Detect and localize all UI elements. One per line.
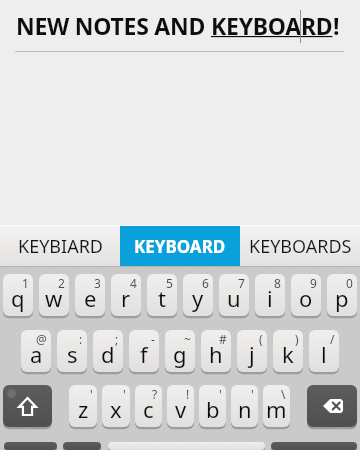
staticText: - (151, 331, 155, 347)
button[interactable]: b (199, 385, 226, 427)
other: Comma (63, 442, 101, 450)
staticText: e (84, 283, 97, 313)
staticText: o (299, 283, 313, 313)
button[interactable]: KEYBOARD (120, 226, 240, 266)
button[interactable]: m (263, 385, 290, 427)
button[interactable]: o (291, 274, 321, 316)
button[interactable]: i (255, 274, 285, 316)
button[interactable]: h (201, 330, 231, 372)
staticText: c (143, 394, 154, 424)
staticText: k (282, 339, 294, 369)
staticText: KEYBOARD (134, 235, 226, 258)
button[interactable]: u (219, 274, 249, 316)
button[interactable]: v (167, 385, 194, 427)
other: Shift (3, 385, 52, 427)
button[interactable]: t (147, 274, 177, 316)
staticText: 4 (130, 275, 137, 291)
staticText: i (267, 283, 273, 313)
staticText: 6 (202, 275, 209, 291)
staticText: ' (90, 386, 93, 402)
button[interactable]: p (327, 274, 357, 316)
button[interactable]: a (21, 330, 51, 372)
staticText: ; (115, 331, 119, 347)
staticText: b (206, 394, 220, 424)
staticText: m (266, 394, 287, 424)
button[interactable]: y (183, 274, 213, 316)
staticText: 5 (166, 275, 173, 291)
staticText: h (209, 339, 223, 369)
button[interactable]: , (63, 442, 101, 450)
button[interactable]: q (3, 274, 33, 316)
staticText: v (175, 394, 187, 424)
staticText: KEYBOARD (211, 10, 333, 41)
button[interactable] (108, 442, 265, 450)
staticText: ! (333, 10, 340, 41)
staticText: g (173, 339, 187, 369)
staticText: KEYBIARD (18, 234, 103, 259)
staticText: u (227, 283, 241, 313)
button[interactable]: d (93, 330, 123, 372)
button[interactable]: k (273, 330, 303, 372)
button[interactable]: z (69, 385, 97, 427)
other: Enter (271, 442, 357, 450)
staticText: f (140, 339, 148, 369)
button[interactable] (307, 385, 357, 427)
staticText: : (79, 331, 83, 347)
staticText: 1 (22, 275, 29, 291)
staticText: # (219, 331, 227, 347)
staticText: 9 (310, 275, 317, 291)
button[interactable]: x (102, 385, 130, 427)
staticText: ? (152, 386, 158, 402)
button[interactable]: KEYBOARDS (240, 226, 360, 266)
button[interactable] (271, 442, 357, 450)
button[interactable]: ?123 (4, 442, 57, 450)
staticText: NEW NOTES AND (16, 10, 211, 41)
staticText: w (45, 283, 63, 313)
button[interactable]: s (57, 330, 87, 372)
staticText: s (67, 339, 78, 369)
staticText: r (121, 283, 131, 313)
staticText: q (11, 283, 25, 313)
button[interactable]: g (165, 330, 195, 372)
staticText: y (192, 283, 204, 313)
staticText: ' (251, 386, 254, 402)
staticText: 8 (274, 275, 281, 291)
staticText: ( (259, 331, 263, 347)
other: Backspace (307, 385, 357, 427)
staticText: 3 (94, 275, 101, 291)
staticText: 7 (238, 275, 245, 291)
button[interactable]: n (231, 385, 258, 427)
staticText: z (78, 394, 89, 424)
staticText: l (321, 339, 327, 369)
button[interactable]: KEYBIARD (0, 226, 120, 266)
staticText: ' (219, 386, 222, 402)
button[interactable]: w (39, 274, 69, 316)
button[interactable]: c (135, 385, 162, 427)
staticText: ' (123, 386, 126, 402)
staticText: 0 (346, 275, 353, 291)
staticText: \ (281, 386, 286, 402)
staticText: @ (36, 331, 47, 347)
staticText: / (330, 331, 335, 347)
staticText: ~ (184, 331, 191, 347)
staticText: t (158, 283, 166, 313)
button[interactable]: r (111, 274, 141, 316)
staticText: 2 (58, 275, 65, 291)
staticText: ) (295, 331, 299, 347)
button[interactable]: l (309, 330, 339, 372)
staticText: n (238, 394, 252, 424)
button[interactable]: j (237, 330, 267, 372)
other: Symbols (4, 442, 57, 450)
button[interactable]: f (129, 330, 159, 372)
staticText: p (335, 283, 349, 313)
button[interactable] (3, 385, 52, 427)
staticText: KEYBOARDS (249, 234, 352, 259)
button[interactable]: e (75, 274, 105, 316)
staticText: a (30, 339, 43, 369)
staticText: ! (186, 386, 190, 402)
staticText: j (249, 339, 255, 369)
staticText: d (101, 339, 115, 369)
staticText: x (110, 394, 122, 424)
